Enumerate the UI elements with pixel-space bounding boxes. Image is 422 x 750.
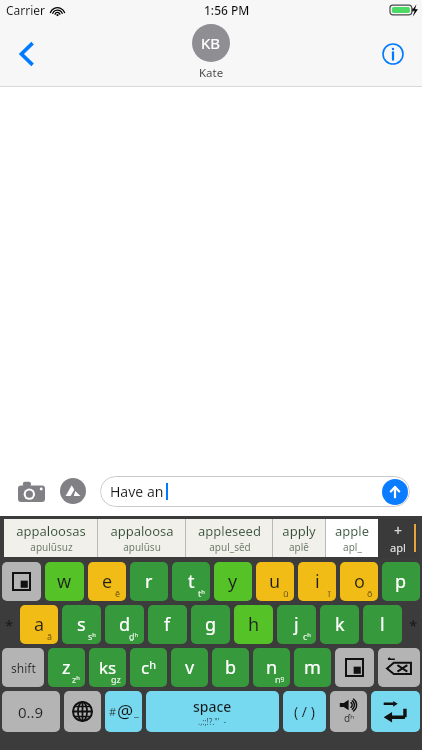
button[interactable]: r [130, 562, 168, 601]
button[interactable]: apple [326, 519, 378, 557]
button[interactable]: j [277, 605, 316, 644]
staticText: p [395, 569, 407, 594]
button[interactable]: v [171, 648, 208, 687]
staticText: apul_sēd [209, 540, 251, 554]
staticText: appleseed [198, 522, 261, 540]
button[interactable]: Symbols [105, 691, 142, 732]
button[interactable]: space [146, 691, 279, 732]
staticText: nᵍ [275, 673, 285, 685]
staticText: ( / ) [294, 702, 315, 721]
button[interactable]: Switch language [64, 691, 101, 732]
staticText: # [109, 704, 117, 719]
button[interactable]: Have an [100, 476, 410, 507]
button[interactable]: f [148, 605, 187, 644]
staticText: appaloosas [16, 522, 86, 540]
button[interactable]: Details [372, 33, 414, 75]
staticText: w [57, 569, 72, 594]
staticText: apulūsu [123, 540, 161, 554]
staticText: apply [282, 522, 316, 540]
button[interactable]: g [191, 605, 230, 644]
button[interactable]: k [320, 605, 359, 644]
button[interactable]: t [172, 562, 210, 601]
button[interactable]: appaloosa [98, 519, 185, 557]
staticText: 0..9 [18, 702, 44, 722]
button[interactable]: Add word [378, 519, 418, 557]
button[interactable]: Camera [14, 474, 48, 508]
staticText: a [34, 612, 45, 637]
staticText: apulūsuz [30, 540, 73, 554]
staticText: e [102, 569, 113, 594]
button[interactable]: Back [4, 32, 48, 76]
staticText: aplē [289, 540, 309, 554]
staticText: * [409, 615, 418, 635]
staticText: d [119, 612, 131, 637]
button[interactable]: n [253, 648, 290, 687]
button[interactable]: b [212, 648, 249, 687]
button[interactable]: o [340, 562, 378, 601]
staticText: ks [99, 656, 117, 679]
button[interactable]: m [294, 648, 331, 687]
button[interactable]: Apps [56, 474, 90, 508]
staticText: appaloosa [110, 522, 174, 540]
button[interactable]: Slash [283, 691, 326, 732]
button[interactable]: KB [192, 24, 230, 62]
staticText: n [266, 655, 278, 680]
staticText: * [5, 615, 14, 635]
button[interactable]: Return [371, 691, 420, 732]
button[interactable]: Layout [335, 648, 374, 687]
staticText: z [62, 655, 71, 680]
staticText: ū [283, 587, 289, 599]
button[interactable]: appleseed [186, 519, 272, 557]
button[interactable]: Layout [2, 562, 41, 601]
staticText: apl_ [343, 540, 362, 554]
button[interactable]: ks [89, 648, 126, 687]
staticText: r [145, 569, 153, 594]
button[interactable]: Backspace [378, 648, 420, 687]
button[interactable]: l [363, 605, 402, 644]
button[interactable]: p [382, 562, 420, 601]
staticText: sʰ [88, 630, 96, 642]
button[interactable]: appaloosas [4, 519, 97, 557]
staticText: ḏʰ [129, 630, 139, 642]
staticText: v [185, 655, 195, 680]
staticText: s [77, 612, 86, 637]
staticText: Kate [199, 65, 224, 81]
staticText: cʰ [141, 656, 156, 679]
staticText: cʰ [303, 630, 311, 642]
staticText: .,:;!?."' - [198, 716, 227, 727]
staticText: j [294, 612, 299, 637]
staticText: y [228, 569, 238, 594]
button[interactable]: cʰ [130, 648, 167, 687]
staticText: k [335, 612, 345, 637]
button[interactable]: shift [2, 648, 44, 687]
button[interactable]: Speak [330, 691, 367, 732]
staticText: ɗʰ [344, 711, 355, 725]
button[interactable]: 0..9 [2, 691, 60, 732]
button[interactable]: d [105, 605, 144, 644]
staticText: o [354, 569, 365, 594]
staticText: apl [390, 540, 406, 555]
staticText: m [304, 655, 321, 680]
button[interactable]: z [48, 648, 85, 687]
staticText: _ [134, 704, 139, 719]
button[interactable]: w [45, 562, 84, 601]
button[interactable]: Send [382, 479, 408, 505]
button[interactable]: i [298, 562, 336, 601]
button[interactable]: u [256, 562, 294, 601]
staticText: u [269, 569, 281, 594]
staticText: h [248, 612, 260, 637]
staticText: ā [47, 630, 53, 642]
button[interactable]: a [20, 605, 58, 644]
staticText: gz [111, 673, 121, 685]
staticText: KB [201, 33, 221, 53]
staticText: 1:56 PM [204, 2, 250, 18]
button[interactable]: y [214, 562, 252, 601]
button[interactable]: s [62, 605, 101, 644]
staticText: + [394, 521, 403, 540]
staticText: zʰ [72, 673, 80, 685]
button[interactable]: apply [273, 519, 325, 557]
staticText: b [225, 655, 237, 680]
button[interactable]: e [88, 562, 126, 601]
staticText: shift [11, 660, 36, 676]
button[interactable]: h [234, 605, 273, 644]
